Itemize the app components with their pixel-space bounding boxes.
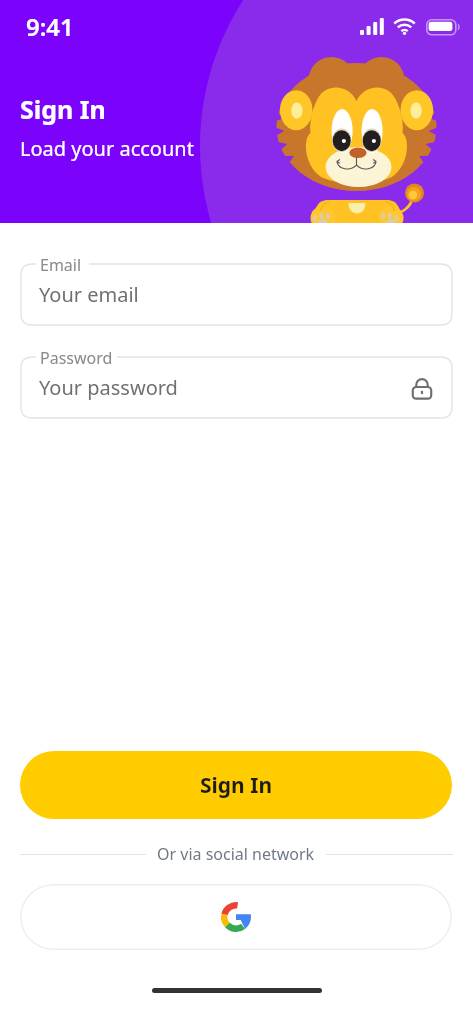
staticText: 9:41 — [26, 10, 74, 43]
button[interactable]: Sign in with Google — [20, 884, 452, 950]
staticText: Sign In — [20, 92, 106, 126]
button[interactable]: Password — [21, 357, 452, 418]
staticText: Or via social network — [157, 843, 315, 865]
staticText: Your email — [39, 281, 139, 308]
button[interactable]: Sign In — [20, 751, 452, 819]
staticText: Password — [40, 347, 113, 369]
staticText: Sign In — [200, 771, 273, 800]
staticText: Load your account — [20, 135, 194, 162]
button[interactable]: Email — [21, 264, 452, 325]
staticText: Email — [40, 254, 82, 276]
staticText: Your password — [39, 374, 178, 401]
